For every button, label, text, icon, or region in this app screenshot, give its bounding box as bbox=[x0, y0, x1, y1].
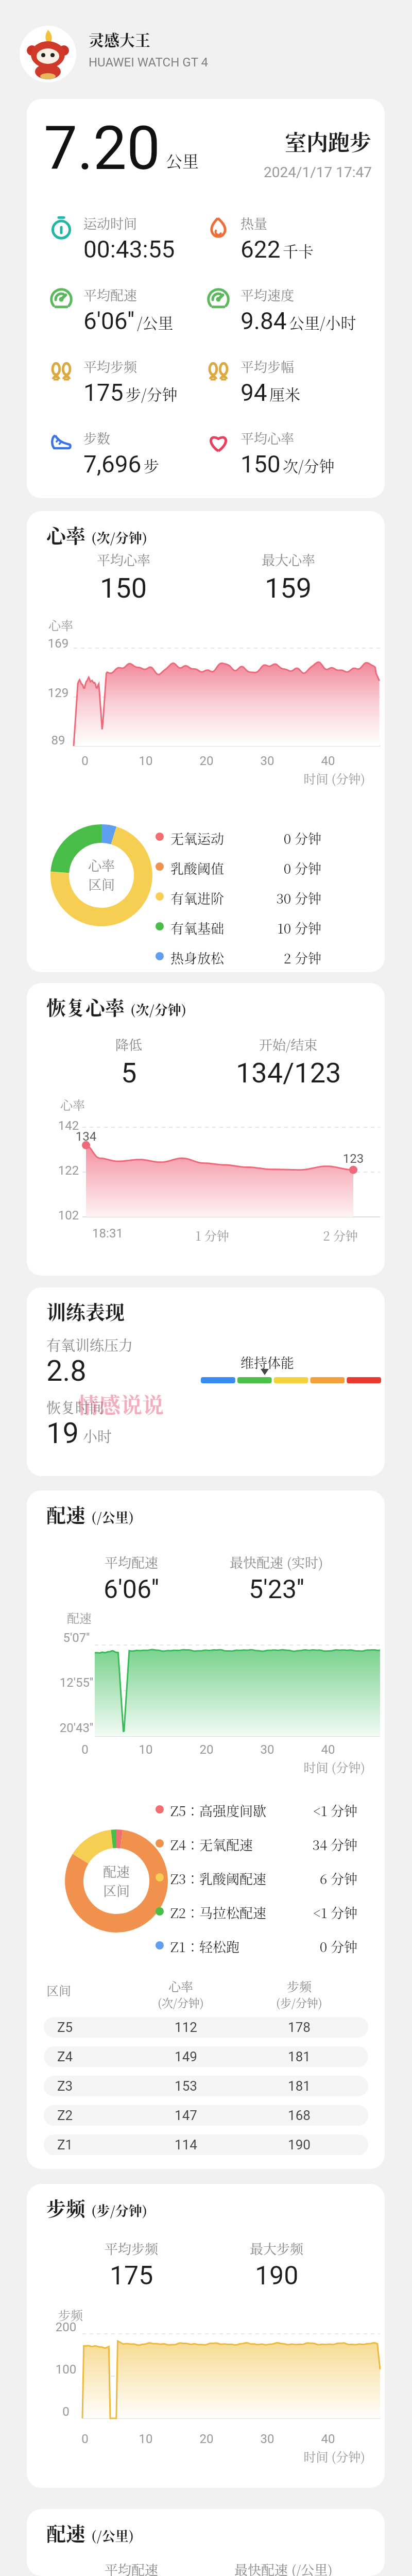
staticText: 0 bbox=[45, 2404, 87, 2419]
staticText: 134/123 bbox=[236, 1057, 341, 1089]
button[interactable]: 平均步幅 bbox=[207, 357, 371, 418]
button[interactable]: 无氧运动 bbox=[151, 826, 332, 847]
staticText: 30 分钟 bbox=[239, 888, 321, 907]
staticText: 150 bbox=[100, 572, 147, 604]
staticText: 心率 bbox=[88, 855, 115, 874]
staticText: 平均配速 bbox=[83, 285, 138, 304]
staticText: 181 bbox=[258, 2049, 340, 2064]
staticText: 2024/1/17 17:47 bbox=[264, 164, 372, 181]
staticText: 1 分钟 bbox=[181, 1226, 243, 1244]
staticText: 最大步频 bbox=[250, 2239, 304, 2258]
button[interactable]: Z4：无氧配速 bbox=[151, 1833, 368, 1856]
button[interactable] bbox=[20, 26, 76, 82]
staticText: 平均步频 bbox=[83, 357, 138, 376]
staticText: 30 bbox=[247, 754, 288, 768]
staticText: 168 bbox=[258, 2108, 340, 2123]
button[interactable]: Z4 bbox=[44, 2046, 368, 2067]
button[interactable]: Z1 bbox=[44, 2134, 368, 2155]
staticText: Z1 bbox=[57, 2137, 73, 2153]
staticText: 9.84 bbox=[241, 307, 287, 335]
staticText: 有氧训练压力 bbox=[46, 1334, 133, 1355]
staticText: 12'55'' bbox=[42, 1675, 111, 1690]
button[interactable]: 平均心率 bbox=[207, 428, 371, 490]
staticText: 00:43:55 bbox=[83, 235, 175, 263]
staticText: 18:31 bbox=[77, 1226, 139, 1241]
staticText: 123 bbox=[338, 1151, 369, 1166]
button[interactable]: 平均步频 bbox=[49, 357, 214, 418]
staticText: 情感说说 bbox=[77, 1388, 164, 1419]
staticText: 厘米 bbox=[269, 382, 300, 404]
staticText: 7.20 bbox=[44, 113, 161, 183]
staticText: 150 bbox=[241, 450, 281, 478]
button[interactable]: 热身放松 bbox=[151, 946, 332, 967]
staticText: Z4：无氧配速 bbox=[170, 1835, 253, 1854]
staticText: 时间 (分钟) bbox=[293, 2447, 365, 2465]
staticText: 平均速度 bbox=[241, 285, 295, 304]
button[interactable]: Z3 bbox=[44, 2076, 368, 2096]
staticText: 降低 bbox=[115, 1035, 143, 1054]
staticText: (次/分钟) bbox=[130, 999, 187, 1019]
button[interactable]: 平均速度 bbox=[207, 285, 371, 347]
staticText: 200 bbox=[45, 2320, 87, 2334]
staticText: (步/分钟) bbox=[276, 1994, 322, 2011]
staticText: 114 bbox=[145, 2137, 227, 2153]
staticText: 0 bbox=[64, 1742, 106, 1757]
staticText: 步频 bbox=[287, 1977, 312, 1994]
button[interactable]: 平均配速 bbox=[49, 285, 214, 347]
button[interactable]: Z5：高强度间歇 bbox=[151, 1799, 368, 1822]
button[interactable]: Z1：轻松跑 bbox=[151, 1935, 368, 1958]
staticText: (步/分钟) bbox=[91, 2200, 148, 2219]
staticText: 平均配速 bbox=[105, 2560, 159, 2576]
button[interactable]: 运动时间 bbox=[49, 213, 214, 275]
staticText: 步 bbox=[144, 454, 159, 476]
staticText: 训练表现 bbox=[46, 1297, 125, 1325]
staticText: 178 bbox=[258, 2020, 340, 2035]
staticText: 运动时间 bbox=[83, 213, 138, 232]
staticText: /公里 bbox=[137, 311, 174, 333]
staticText: 10 bbox=[125, 1742, 166, 1757]
staticText: 20 bbox=[186, 754, 227, 768]
staticText: 153 bbox=[145, 2078, 227, 2094]
staticText: 平均心率 bbox=[97, 550, 151, 569]
staticText: 区间 bbox=[46, 1981, 71, 1998]
staticText: 步数 bbox=[83, 428, 111, 447]
staticText: 有氧进阶 bbox=[170, 888, 225, 907]
staticText: 102 bbox=[48, 1208, 89, 1223]
staticText: 129 bbox=[38, 686, 79, 700]
staticText: 19 bbox=[46, 1416, 79, 1450]
staticText: 175 bbox=[110, 2261, 153, 2291]
staticText: 最快配速 (实时) bbox=[230, 1552, 323, 1571]
button[interactable]: 热量 bbox=[207, 213, 371, 275]
button[interactable]: Z2：马拉松配速 bbox=[151, 1901, 368, 1924]
staticText: 千卡 bbox=[283, 239, 314, 261]
staticText: 平均步频 bbox=[105, 2239, 159, 2258]
staticText: 时间 (分钟) bbox=[293, 769, 365, 787]
button[interactable]: 有氧进阶 bbox=[151, 886, 332, 907]
staticText: (次/分钟) bbox=[91, 528, 148, 547]
staticText: 乳酸阈值 bbox=[170, 858, 225, 877]
staticText: 94 bbox=[241, 379, 267, 406]
staticText: <1 分钟 bbox=[275, 1903, 357, 1922]
staticText: 159 bbox=[265, 572, 312, 604]
staticText: 灵感大王 bbox=[89, 28, 150, 50]
staticText: 公里/小时 bbox=[289, 311, 356, 333]
staticText: 40 bbox=[307, 2432, 349, 2446]
staticText: 7,696 bbox=[83, 450, 142, 478]
button[interactable]: Z2 bbox=[44, 2105, 368, 2126]
button[interactable]: 步数 bbox=[49, 428, 214, 490]
staticText: 10 bbox=[125, 754, 166, 768]
staticText: 6 分钟 bbox=[275, 1869, 357, 1888]
staticText: 5'07'' bbox=[42, 1631, 111, 1645]
button[interactable]: 乳酸阈值 bbox=[151, 856, 332, 877]
staticText: 心率 bbox=[46, 520, 86, 549]
staticText: 区间 bbox=[103, 1880, 130, 1900]
staticText: 0 bbox=[64, 754, 106, 768]
button[interactable]: 有氧基础 bbox=[151, 916, 332, 937]
staticText: 小时 bbox=[83, 1426, 112, 1446]
staticText: 2 分钟 bbox=[310, 1226, 371, 1244]
staticText: 149 bbox=[145, 2049, 227, 2064]
staticText: 122 bbox=[48, 1163, 89, 1178]
button[interactable]: Z3：乳酸阈配速 bbox=[151, 1867, 368, 1890]
button[interactable]: Z5 bbox=[44, 2017, 368, 2038]
staticText: 最快配速 (/公里) bbox=[234, 2560, 333, 2576]
